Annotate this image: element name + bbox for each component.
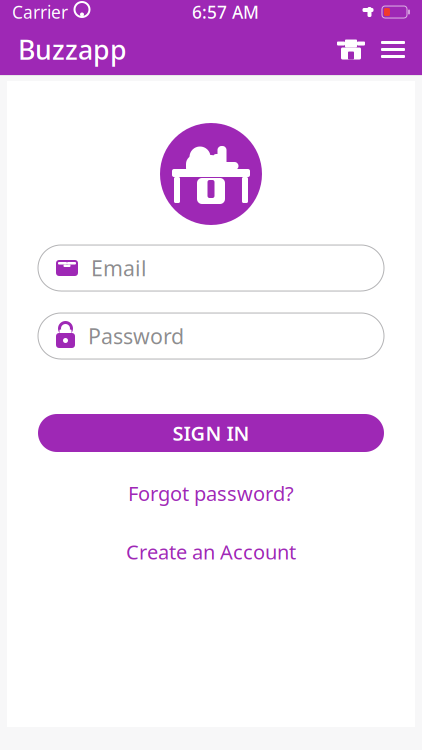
staticText: Buzzapp (18, 32, 127, 67)
button[interactable]: Home (330, 27, 372, 71)
staticText: Create an Account (126, 539, 296, 565)
staticText: 6:57 AM (192, 0, 259, 23)
button[interactable]: Forgot password? (38, 474, 384, 513)
staticText: Forgot password? (128, 480, 294, 507)
staticText: Password (88, 322, 184, 350)
staticText: Email (91, 254, 147, 282)
button[interactable]: SIGN IN (38, 414, 384, 452)
button[interactable]: Menu (372, 27, 414, 71)
button[interactable]: Create an Account (38, 533, 384, 571)
staticText: Carrier (12, 0, 68, 23)
staticText: SIGN IN (172, 420, 249, 446)
